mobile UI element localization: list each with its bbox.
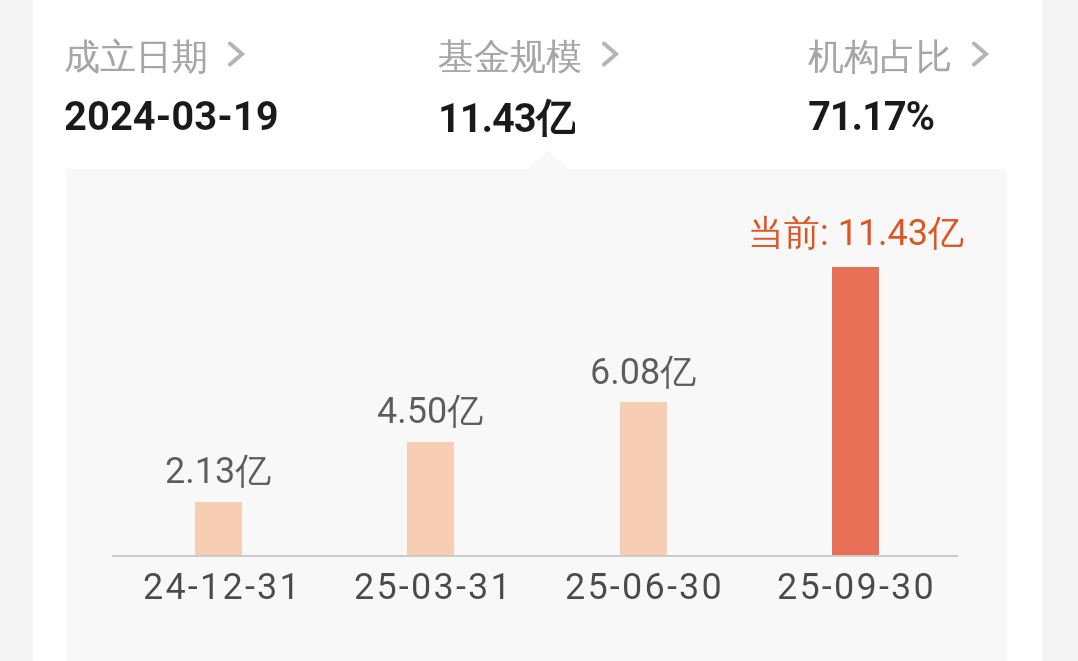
staticText: 71.17% xyxy=(808,93,934,137)
staticText: 6.08亿 xyxy=(590,349,697,394)
button[interactable]: 基金规模 xyxy=(438,34,618,137)
staticText: 25-03-31 xyxy=(354,566,513,608)
staticText: 2.13亿 xyxy=(165,448,272,493)
staticText: 25-09-30 xyxy=(777,566,936,608)
staticText: 当前: 11.43亿 xyxy=(748,210,965,255)
staticText: 4.50亿 xyxy=(377,388,484,433)
staticText: 11.43亿 xyxy=(438,93,575,137)
staticText: 2024-03-19 xyxy=(64,93,279,137)
staticText: 24-12-31 xyxy=(143,566,302,608)
staticText: 成立日期 xyxy=(64,34,208,74)
staticText: 机构占比 xyxy=(808,34,952,74)
staticText: 25-06-30 xyxy=(565,566,724,608)
button[interactable]: 机构占比 xyxy=(808,34,988,137)
staticText: 基金规模 xyxy=(438,34,582,74)
button[interactable]: 成立日期 xyxy=(64,34,279,137)
